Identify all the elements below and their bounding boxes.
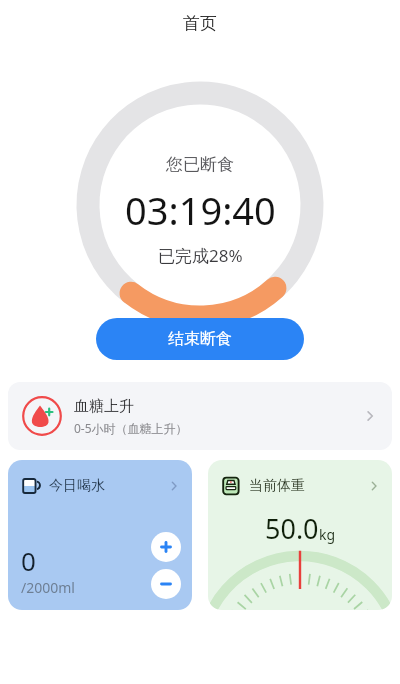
button[interactable]: 今日喝水 — [8, 460, 192, 610]
staticText: 首页 — [183, 13, 217, 34]
staticText: /2000ml — [21, 578, 75, 597]
staticText: 0 — [21, 543, 36, 578]
staticText: kg — [319, 525, 336, 544]
staticText: 50.0 — [265, 510, 319, 547]
staticText: 血糖上升 — [74, 397, 134, 416]
button[interactable]: Remove water — [151, 569, 181, 599]
button[interactable]: Add water — [151, 532, 181, 562]
staticText: 今日喝水 — [49, 477, 105, 495]
staticText: 0-5小时（血糖上升） — [74, 420, 188, 436]
button[interactable]: 结束断食 — [96, 318, 304, 360]
staticText: 已完成28% — [158, 244, 243, 267]
button[interactable]: 血糖上升 — [8, 382, 392, 450]
staticText: 结束断食 — [168, 329, 232, 349]
button[interactable]: 当前体重 — [208, 460, 392, 610]
staticText: 03:19:40 — [125, 184, 276, 236]
staticText: 您已断食 — [166, 154, 234, 175]
staticText: 当前体重 — [249, 477, 305, 495]
